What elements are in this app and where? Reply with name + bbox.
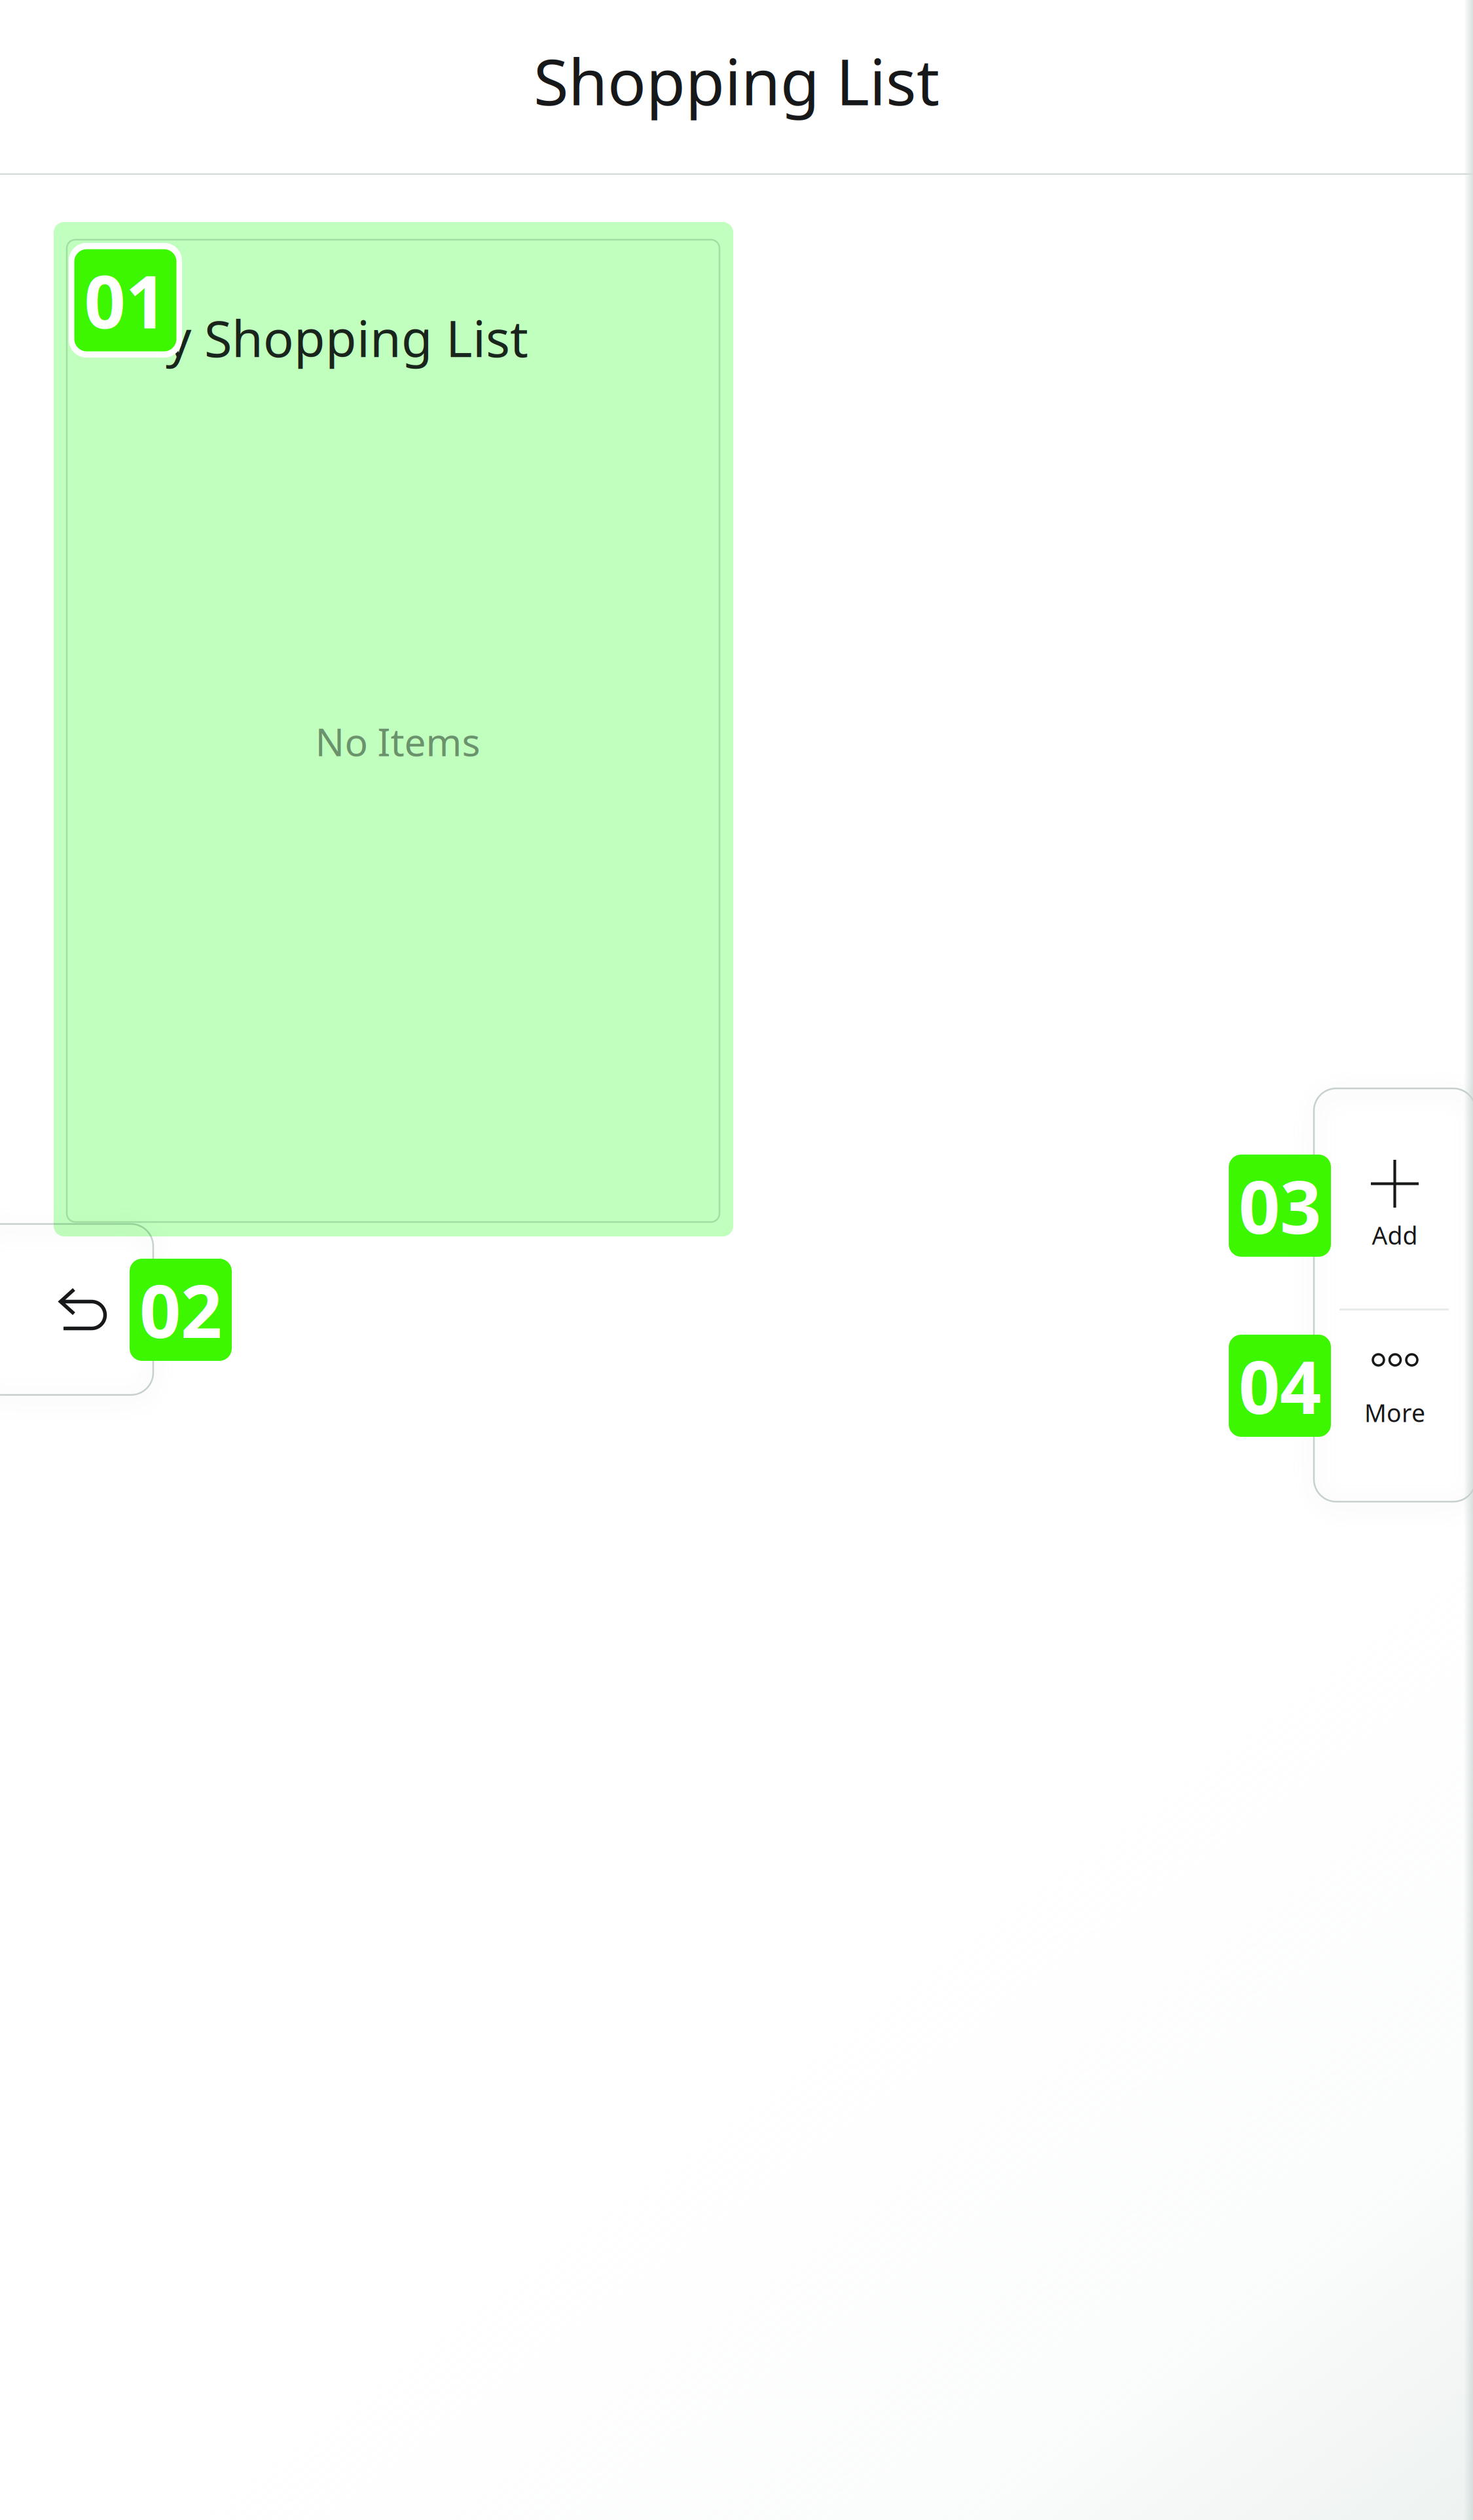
button[interactable]: Add: [1314, 1088, 1473, 1307]
staticText: Shopping List: [534, 38, 939, 123]
staticText: 04: [1239, 1338, 1321, 1434]
button[interactable]: Undo: [0, 1224, 153, 1395]
staticText: 02: [139, 1262, 222, 1358]
button[interactable]: More: [1314, 1307, 1473, 1502]
staticText: Add: [1372, 1219, 1418, 1251]
staticText: 03: [1239, 1158, 1321, 1254]
staticText: My Shopping List: [120, 304, 528, 371]
staticText: 01: [84, 252, 167, 348]
staticText: No Items: [315, 716, 480, 767]
staticText: More: [1364, 1396, 1425, 1429]
